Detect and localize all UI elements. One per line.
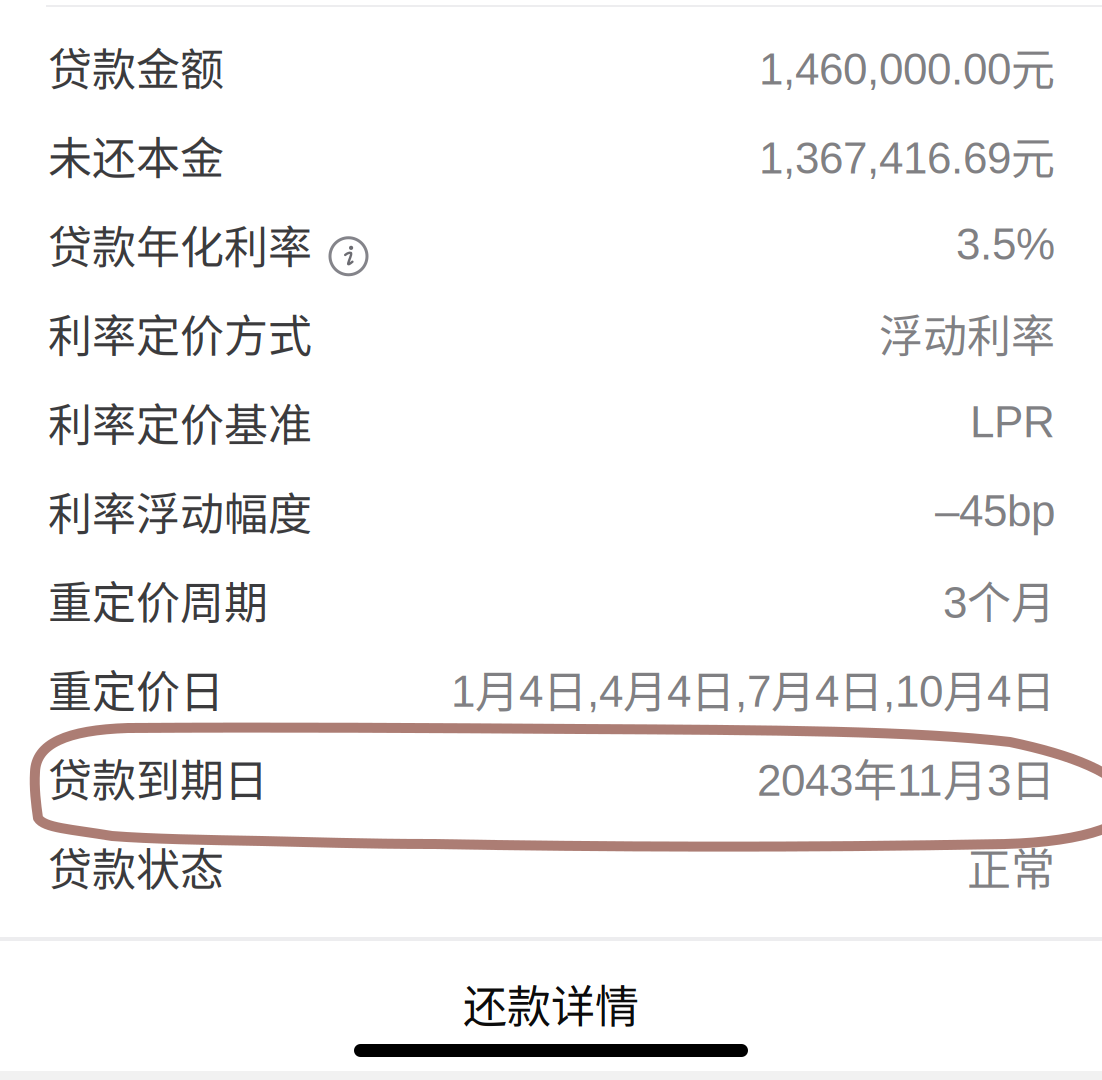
staticText: LPR [970,397,1055,447]
staticText: 贷款状态 [48,835,224,898]
staticText: 重定价日 [48,657,224,721]
staticText: –45bp [935,486,1055,536]
staticText: 贷款金额 [48,35,224,98]
staticText: 利率定价基准 [48,390,312,454]
staticText: 未还本金 [48,123,224,187]
staticText: 1月4日,4月4日,7月4日,10月4日 [451,657,1055,721]
staticText: 贷款到期日 [48,746,268,809]
staticText: 贷款年化利率 [48,212,312,276]
staticText: 利率浮动幅度 [48,479,312,543]
staticText: 1,367,416.69元 [759,123,1055,187]
staticText: 浮动利率 [879,301,1055,365]
staticText: 1,460,000.00元 [759,35,1055,98]
staticText: 还款详情 [463,972,639,1035]
staticText: 3.5% [956,220,1055,269]
button[interactable]: 还款详情 [0,963,1102,1044]
staticText: 3个月 [943,568,1055,632]
staticText: 重定价周期 [48,568,268,632]
staticText: 2043年11月3日 [757,746,1055,809]
staticText: 利率定价方式 [48,301,312,365]
staticText: 正常 [967,835,1055,898]
